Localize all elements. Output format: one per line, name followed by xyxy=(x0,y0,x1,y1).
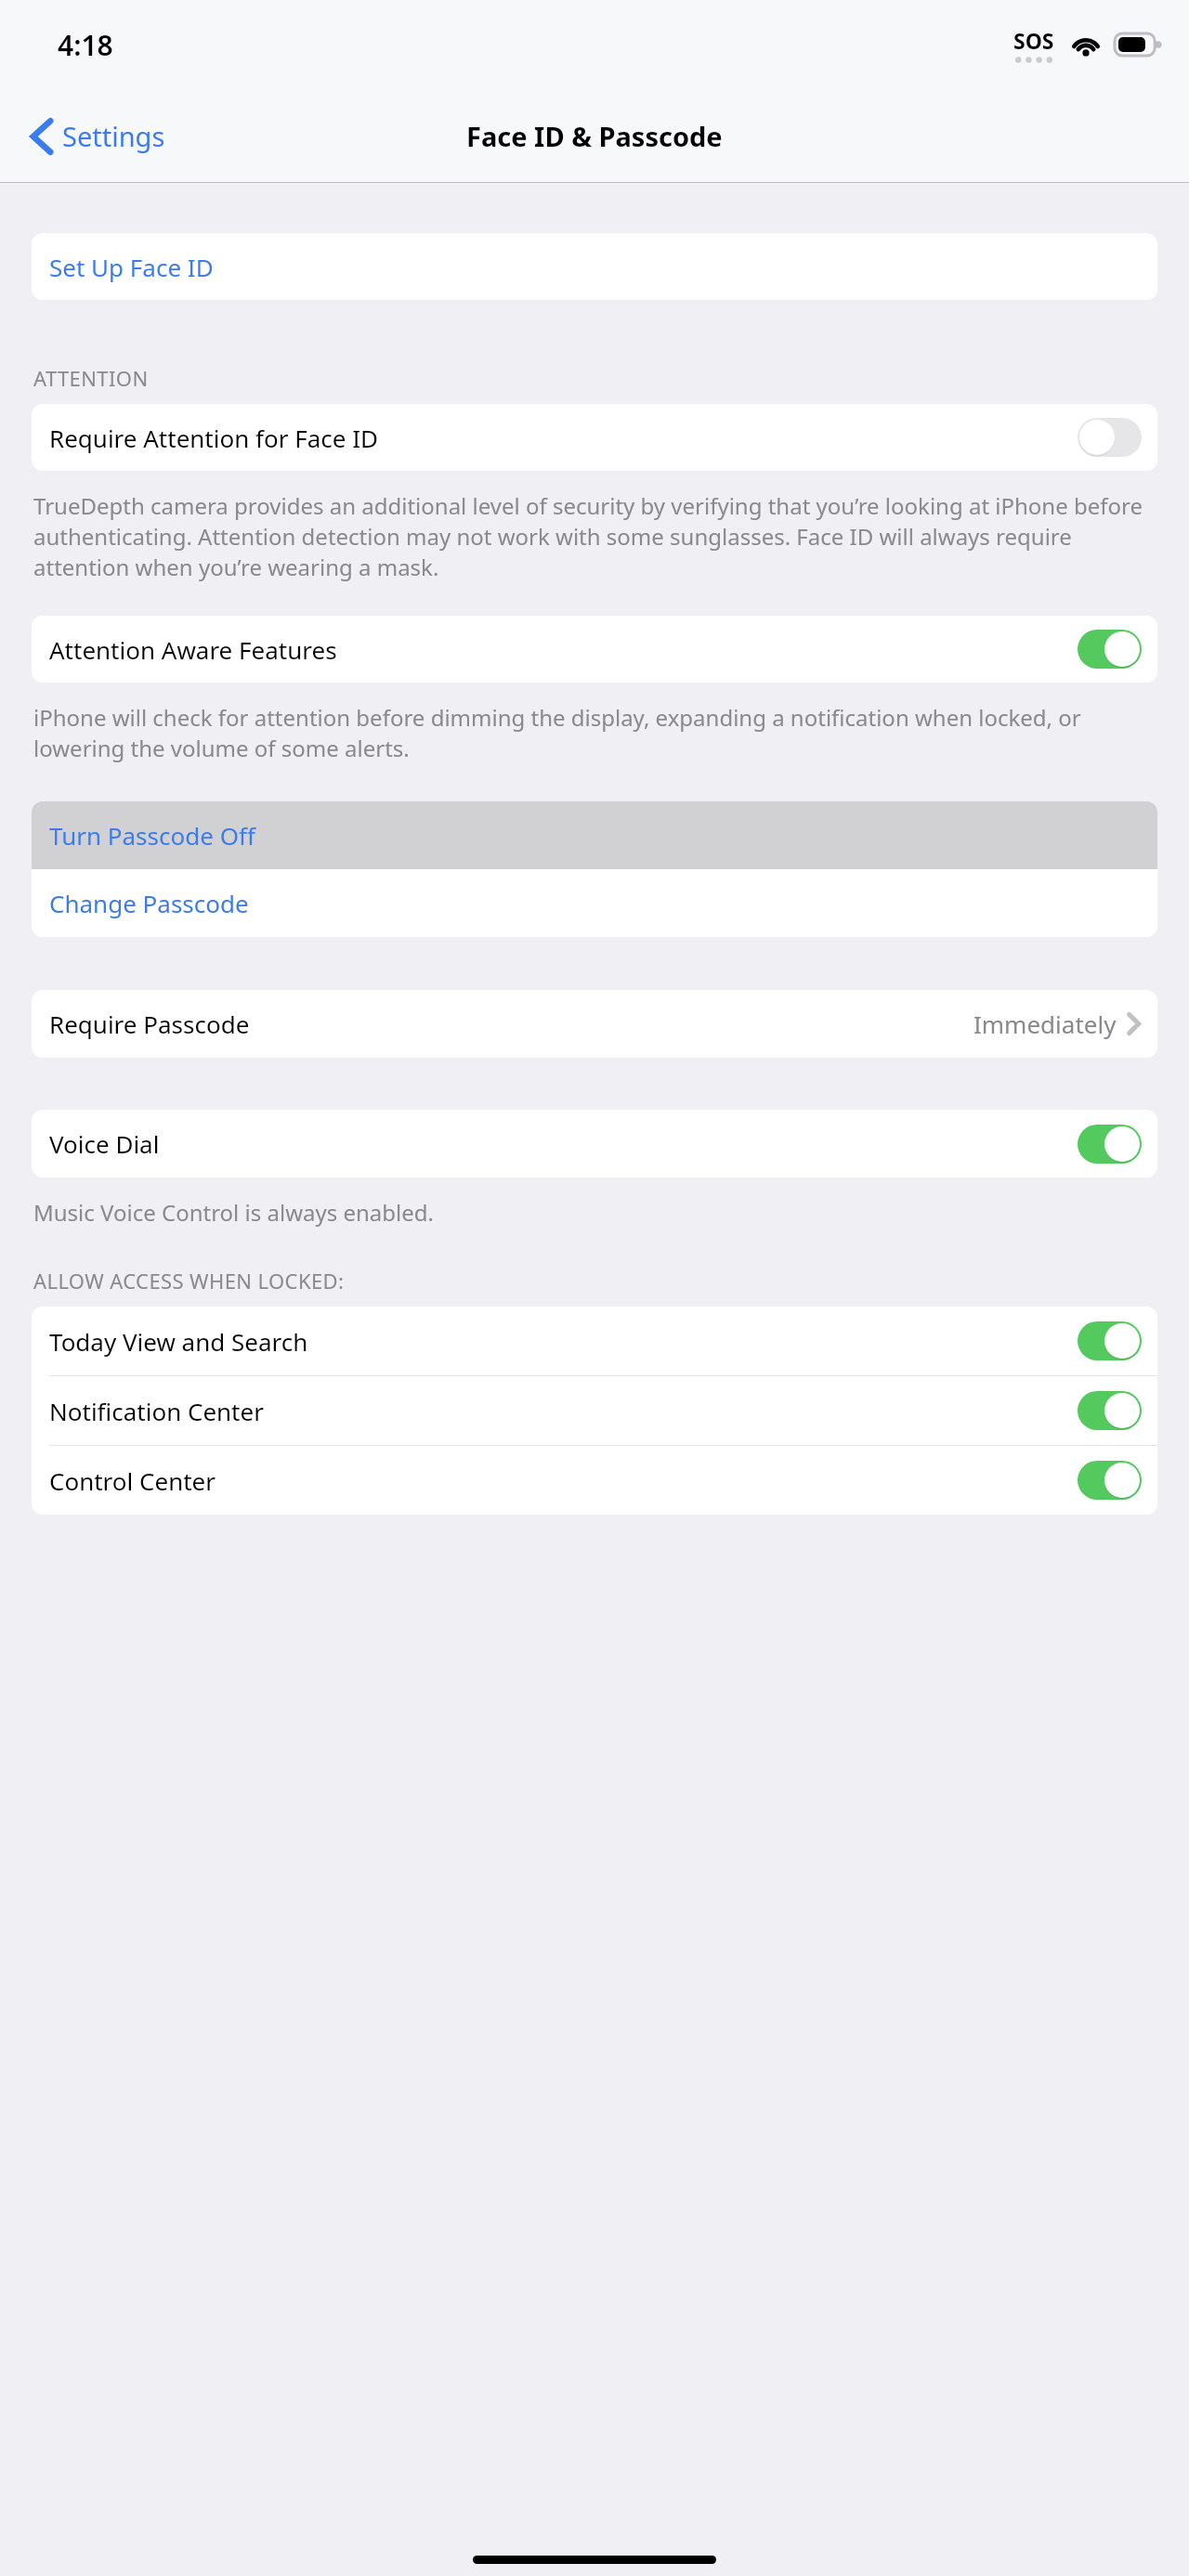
staticText: Settings xyxy=(62,118,165,154)
staticText: Voice Dial xyxy=(49,1127,1078,1160)
button[interactable]: Change Passcode xyxy=(32,869,1157,937)
button[interactable]: Control Center xyxy=(32,1446,1157,1515)
button[interactable]: Set Up Face ID xyxy=(32,233,1157,300)
button[interactable]: Turn Passcode Off xyxy=(32,801,1157,869)
staticText: TrueDepth camera provides an additional … xyxy=(33,490,1154,582)
button[interactable]: Attention Aware Features xyxy=(32,616,1157,683)
staticText: Music Voice Control is always enabled. xyxy=(33,1197,434,1228)
button[interactable]: Today View and Search xyxy=(32,1307,1157,1375)
staticText: Require Passcode xyxy=(49,1008,973,1040)
button[interactable]: Require Attention for Face ID xyxy=(32,404,1157,471)
staticText: Turn Passcode Off xyxy=(49,819,255,852)
staticText: ALLOW ACCESS WHEN LOCKED: xyxy=(33,1267,345,1295)
button[interactable]: Voice Dial xyxy=(32,1110,1157,1177)
button[interactable]: Settings xyxy=(0,111,176,162)
staticText: 4:18 xyxy=(58,26,113,64)
staticText: SOS xyxy=(1013,26,1054,55)
staticText: ATTENTION xyxy=(33,364,149,392)
button[interactable]: Require Passcode xyxy=(32,990,1157,1058)
staticText: Attention Aware Features xyxy=(49,633,1078,666)
button[interactable]: Notification Center xyxy=(32,1376,1157,1445)
staticText: Immediately xyxy=(973,1008,1117,1040)
staticText: Set Up Face ID xyxy=(49,251,214,283)
staticText: Face ID & Passcode xyxy=(466,118,723,154)
staticText: iPhone will check for attention before d… xyxy=(33,702,1154,763)
staticText: Change Passcode xyxy=(49,887,249,919)
staticText: Require Attention for Face ID xyxy=(49,422,1078,454)
staticText: Today View and Search xyxy=(49,1325,1078,1358)
staticText: Control Center xyxy=(49,1464,1078,1497)
staticText: Notification Center xyxy=(49,1395,1078,1427)
